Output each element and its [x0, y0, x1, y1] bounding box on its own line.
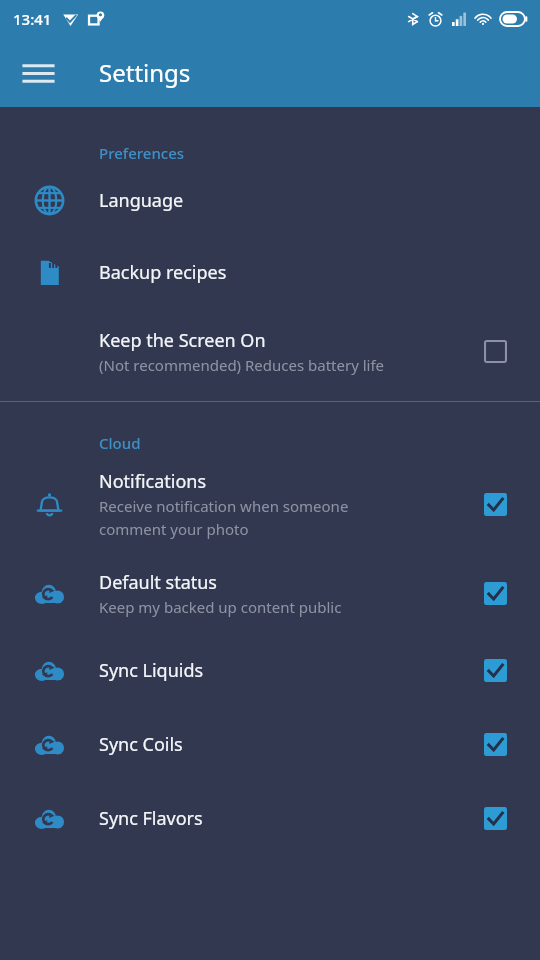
- staticText: Notifications: [99, 469, 207, 494]
- button[interactable]: Sync Liquids: [473, 648, 517, 692]
- button[interactable]: Default status: [0, 553, 540, 633]
- staticText: Keep my backed up content public: [99, 597, 342, 617]
- staticText: Receive notification when someone commen…: [99, 496, 349, 539]
- staticText: Settings: [99, 56, 191, 89]
- staticText: Preferences: [99, 143, 185, 163]
- staticText: Keep the Screen On: [99, 328, 266, 353]
- button[interactable]: Sync Coils: [473, 722, 517, 766]
- staticText: Backup recipes: [99, 260, 227, 285]
- staticText: Sync Liquids: [99, 658, 204, 683]
- staticText: 13:41: [13, 9, 52, 29]
- button[interactable]: Language: [0, 165, 540, 235]
- button[interactable]: Backup recipes: [0, 235, 540, 309]
- staticText: Default status: [99, 570, 217, 595]
- button[interactable]: Keep the Screen On: [0, 309, 540, 393]
- button[interactable]: Keep the Screen On: [473, 329, 517, 373]
- staticText: Sync Coils: [99, 732, 183, 757]
- button[interactable]: Sync Flavors: [473, 796, 517, 840]
- staticText: Language: [99, 188, 184, 213]
- button[interactable]: Sync Liquids: [0, 633, 540, 707]
- button[interactable]: Notifications: [0, 455, 540, 553]
- button[interactable]: Sync Coils: [0, 707, 540, 781]
- staticText: Cloud: [99, 433, 141, 453]
- button[interactable]: Open navigation menu: [14, 49, 62, 97]
- button[interactable]: Sync Flavors: [0, 781, 540, 855]
- staticText: (Not recommended) Reduces battery life: [99, 355, 385, 375]
- button[interactable]: Default status: [473, 571, 517, 615]
- button[interactable]: Notifications: [473, 482, 517, 526]
- staticText: Sync Flavors: [99, 806, 203, 831]
